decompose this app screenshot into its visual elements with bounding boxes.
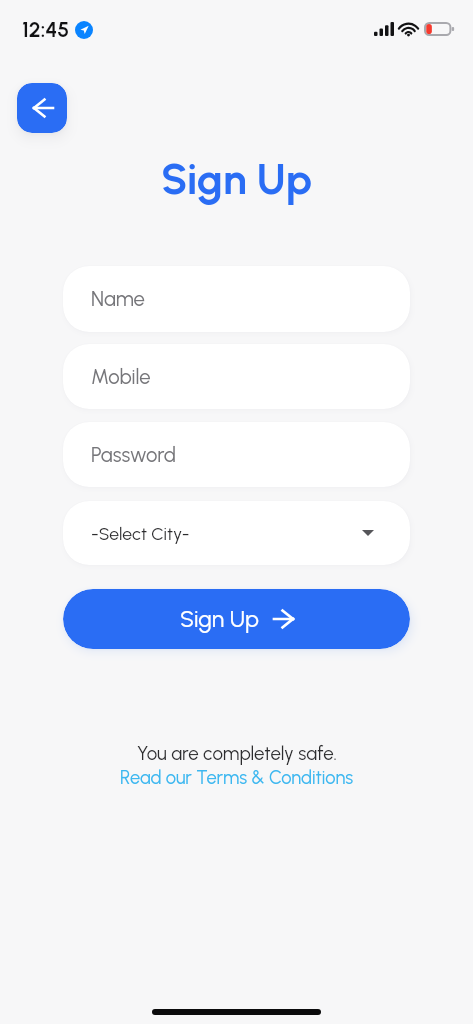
staticText: Read our Terms & Conditions	[120, 767, 354, 789]
button[interactable]: Password	[63, 422, 410, 487]
staticText: Mobile	[91, 365, 151, 389]
staticText: 12:45	[22, 17, 70, 42]
button[interactable]: Back	[17, 83, 67, 133]
button[interactable]: Name	[63, 266, 410, 332]
button[interactable]: -Select City-	[63, 501, 410, 565]
staticText: Password	[91, 443, 177, 467]
staticText: Sign Up	[180, 605, 259, 633]
button[interactable]: Mobile	[63, 344, 410, 409]
button[interactable]: Read our Terms & Conditions	[120, 767, 354, 789]
staticText: You are completely safe.	[137, 742, 337, 764]
staticText: -Select City-	[91, 523, 190, 544]
button[interactable]: Sign Up	[63, 589, 410, 649]
staticText: Name	[91, 287, 145, 311]
staticText: Sign Up	[161, 154, 313, 205]
